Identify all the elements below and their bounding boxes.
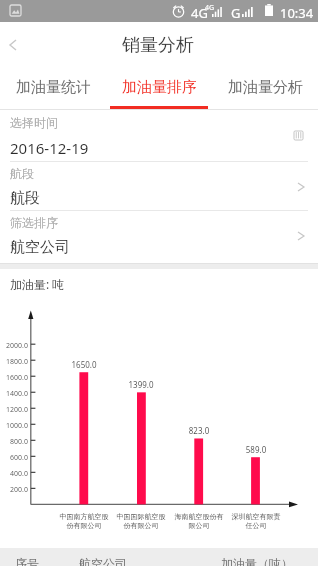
- staticText: 销量分析: [122, 34, 194, 57]
- staticText: 加油量: 吨: [10, 276, 65, 292]
- staticText: 航空公司: [10, 238, 70, 257]
- staticText: 中国南方航空股 份有限公司: [55, 512, 113, 530]
- staticText: 1399.0: [121, 379, 161, 390]
- staticText: 序号: [15, 556, 39, 566]
- staticText: 中国国际航空股 份有限公司: [112, 512, 170, 530]
- button[interactable]: 加油量分析: [212, 64, 318, 107]
- staticText: 选择时间: [10, 115, 58, 130]
- staticText: 200.0: [0, 485, 28, 495]
- button[interactable]: 航段: [0, 163, 318, 211]
- button[interactable]: 筛选排序: [0, 212, 318, 260]
- staticText: 4G: [191, 4, 208, 22]
- staticText: 航空公司: [79, 556, 127, 566]
- staticText: 10:34: [280, 4, 314, 22]
- staticText: 1600.0: [0, 373, 28, 383]
- staticText: 加油量（吨）: [221, 556, 293, 566]
- staticText: 1400.0: [0, 389, 28, 399]
- staticText: 1000.0: [0, 421, 28, 431]
- staticText: 航段: [10, 189, 40, 208]
- staticText: 823.0: [179, 425, 219, 436]
- staticText: 2016-12-19: [10, 138, 89, 158]
- staticText: 4G: [205, 3, 215, 13]
- staticText: 1200.0: [0, 405, 28, 415]
- staticText: 加油量统计: [16, 78, 91, 97]
- staticText: G: [231, 4, 241, 22]
- staticText: 航段: [10, 166, 34, 181]
- staticText: 加油量分析: [228, 78, 303, 97]
- staticText: 深圳航空有限责 任公司: [227, 512, 285, 530]
- staticText: 海南航空股份有 限公司: [170, 512, 228, 530]
- staticText: 2000.0: [0, 341, 28, 351]
- button[interactable]: Back: [0, 22, 40, 64]
- staticText: 1650.0: [64, 359, 104, 370]
- staticText: 筛选排序: [10, 215, 58, 230]
- staticText: 加油量排序: [122, 78, 197, 97]
- staticText: 600.0: [0, 453, 28, 463]
- staticText: 1800.0: [0, 357, 28, 367]
- button[interactable]: 选择时间: [0, 112, 318, 160]
- button[interactable]: 加油量统计: [0, 64, 106, 107]
- staticText: 800.0: [0, 437, 28, 447]
- staticText: 400.0: [0, 469, 28, 479]
- button[interactable]: 加油量排序: [106, 64, 212, 107]
- staticText: 589.0: [236, 444, 276, 455]
